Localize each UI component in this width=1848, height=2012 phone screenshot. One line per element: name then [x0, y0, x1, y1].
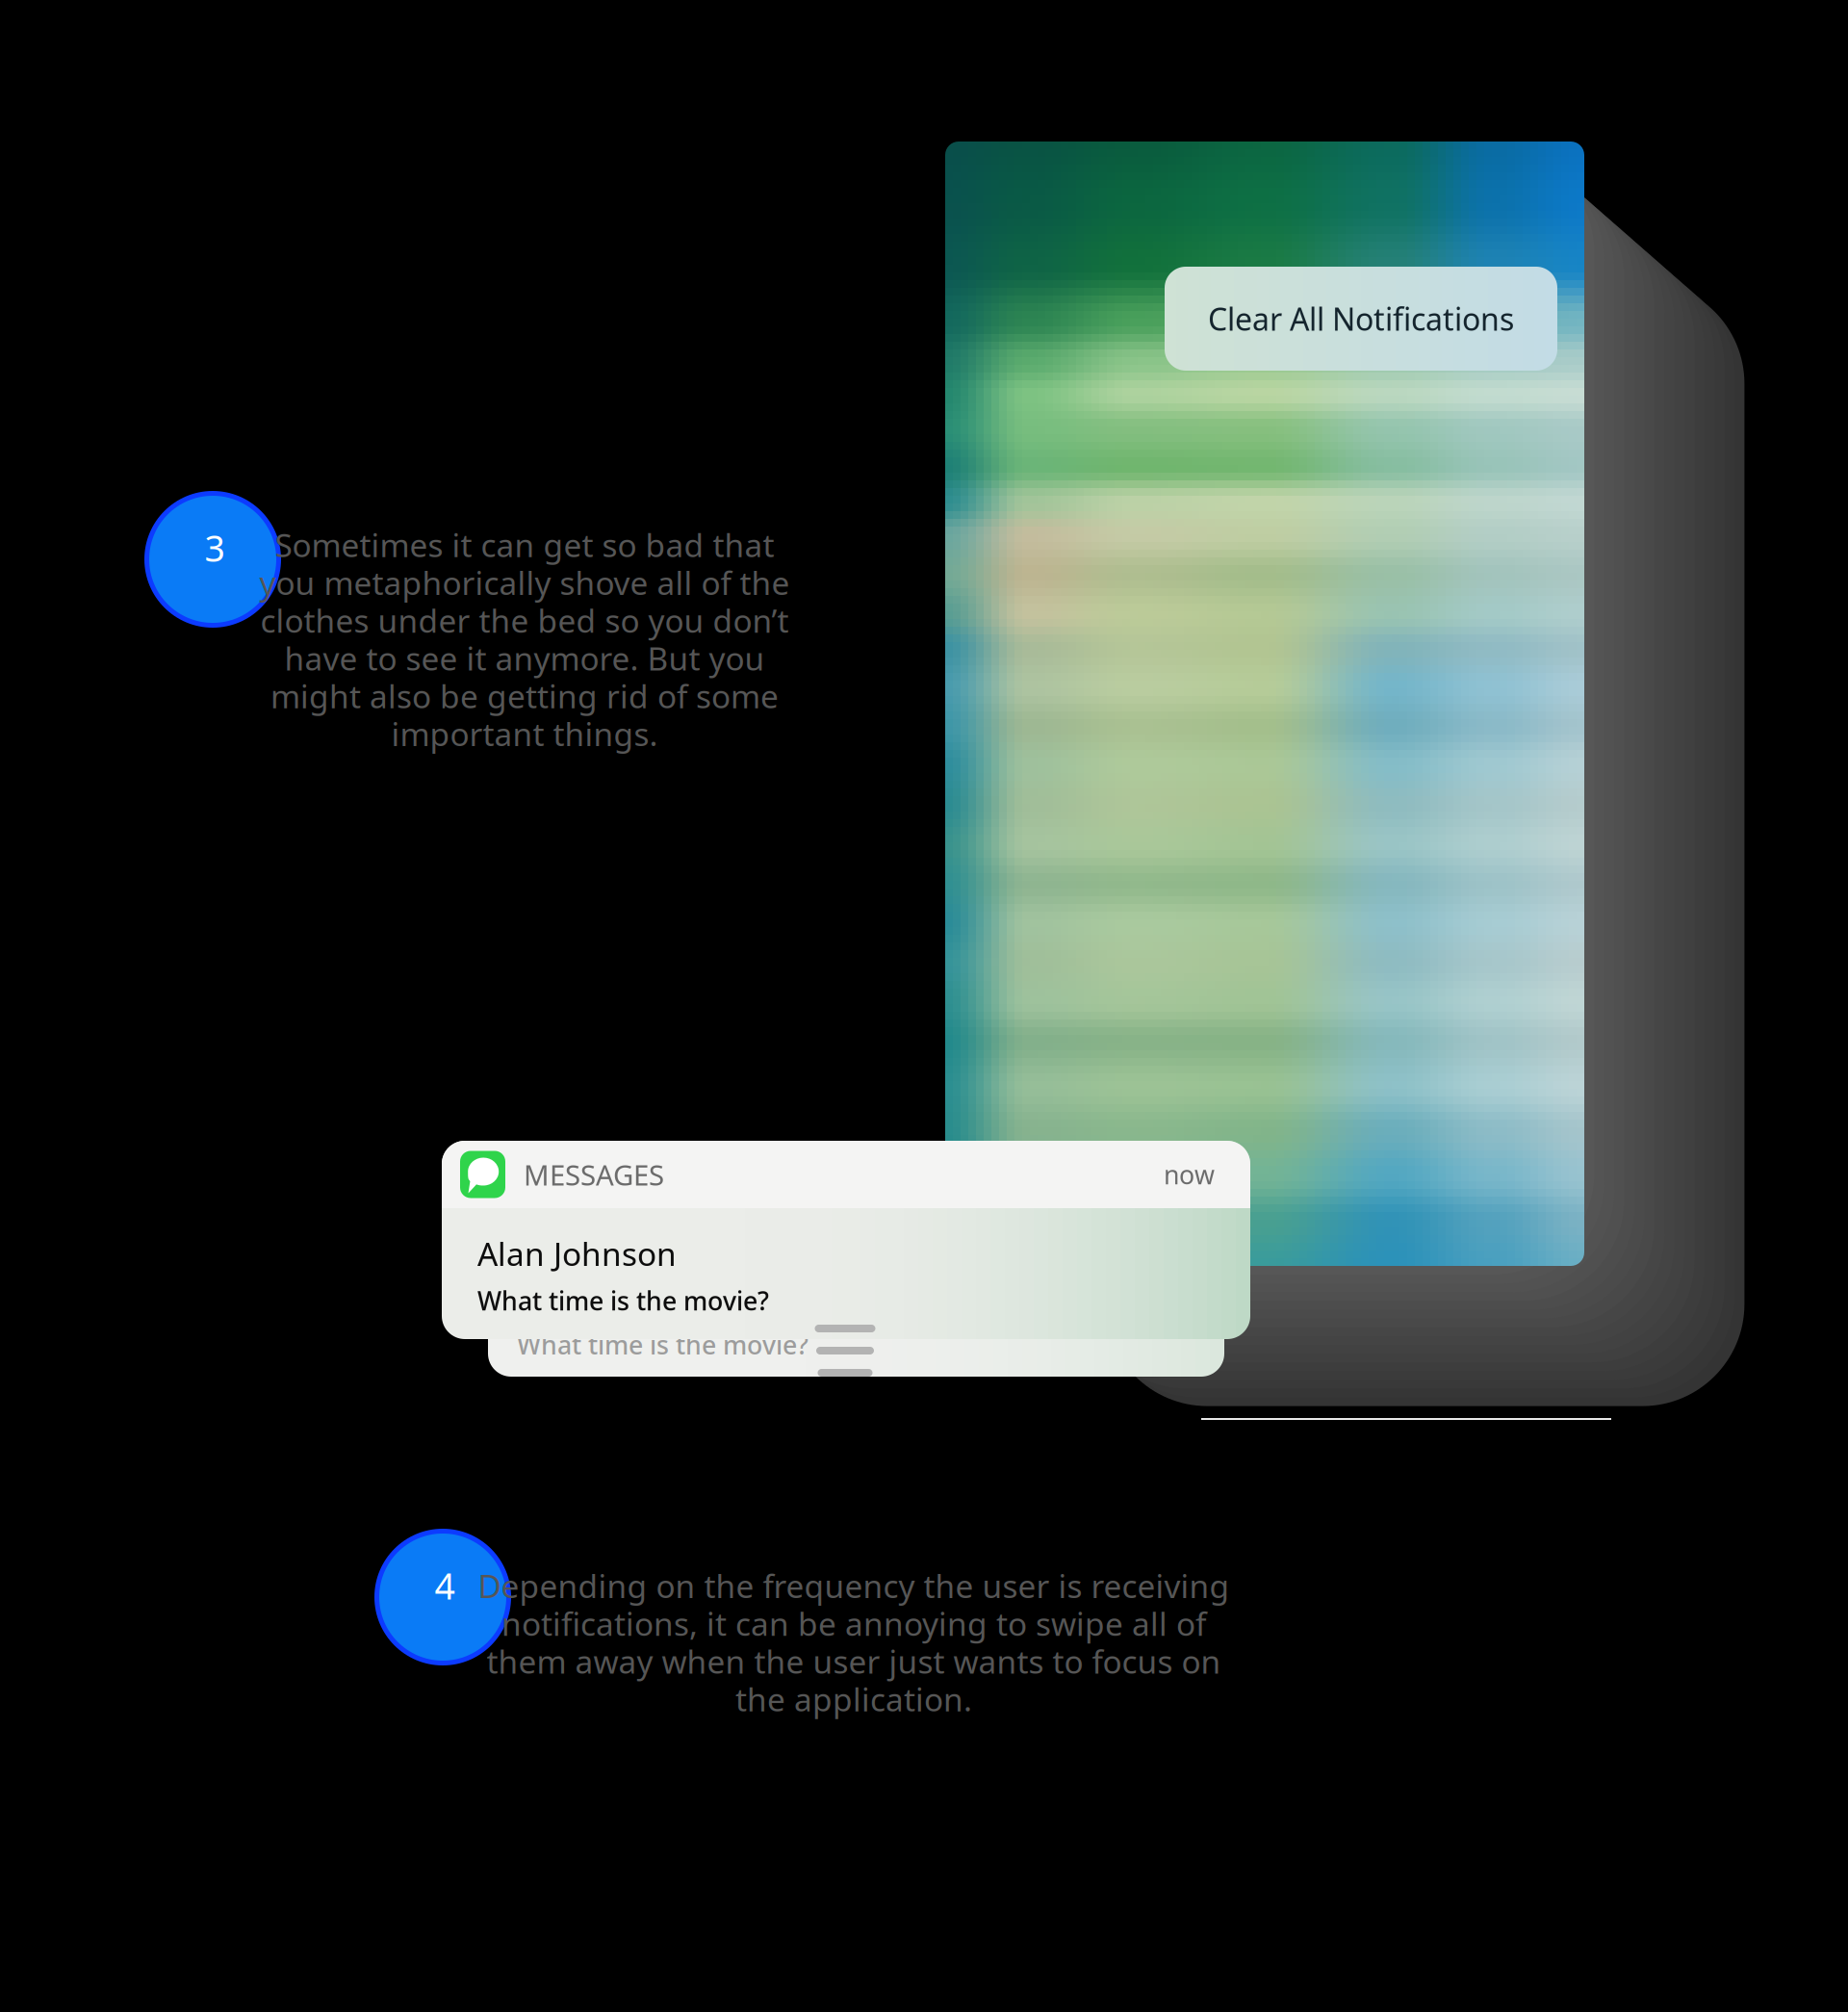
- staticText: What time is the movie?: [477, 1284, 769, 1318]
- staticText: 3: [205, 524, 225, 572]
- staticText: the application.: [735, 1678, 972, 1720]
- staticText: Alan Johnson: [477, 1232, 677, 1275]
- button[interactable]: MESSAGES: [442, 1141, 1250, 1339]
- staticText: important things.: [391, 712, 658, 755]
- staticText: Depending on the frequency the user is r…: [478, 1564, 1230, 1607]
- button[interactable]: Clear All Notifications: [1165, 267, 1557, 371]
- staticText: have to see it anymore. But you: [284, 637, 765, 679]
- staticText: might also be getting rid of some: [270, 675, 779, 717]
- staticText: MESSAGES: [524, 1156, 664, 1193]
- button[interactable]: What time is the movie?: [488, 1165, 1224, 1377]
- staticText: now: [1164, 1157, 1215, 1192]
- staticText: Sometimes it can get so bad that: [275, 523, 774, 566]
- staticText: What time is the movie?: [517, 1328, 808, 1362]
- staticText: notifications, it can be annoying to swi…: [501, 1602, 1206, 1645]
- staticText: Clear All Notifications: [1208, 298, 1514, 339]
- staticText: 4: [435, 1562, 455, 1609]
- staticText: you metaphorically shove all of the: [259, 561, 790, 604]
- staticText: clothes under the bed so you don’t: [260, 599, 789, 642]
- staticText: them away when the user just wants to fo…: [487, 1640, 1221, 1683]
